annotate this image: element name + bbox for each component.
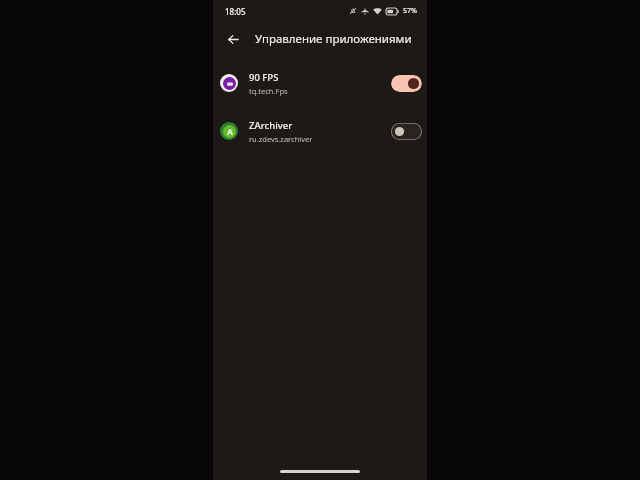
staticText: 57%: [403, 6, 417, 16]
staticText: A: [227, 126, 233, 137]
button[interactable]: 90 FPS: [213, 66, 427, 100]
staticText: 90 FPS: [249, 71, 279, 84]
staticText: Управление приложениями: [255, 31, 412, 47]
staticText: 18:05: [225, 6, 246, 17]
staticText: ru.zdevs.zarchiver: [249, 134, 313, 144]
button[interactable]: A: [213, 114, 427, 148]
button[interactable]: Off: [391, 123, 422, 140]
button[interactable]: Back: [219, 25, 247, 53]
staticText: tq.tech.Fps: [249, 86, 288, 96]
staticText: ZArchiver: [249, 119, 293, 132]
button[interactable]: On: [391, 75, 422, 92]
